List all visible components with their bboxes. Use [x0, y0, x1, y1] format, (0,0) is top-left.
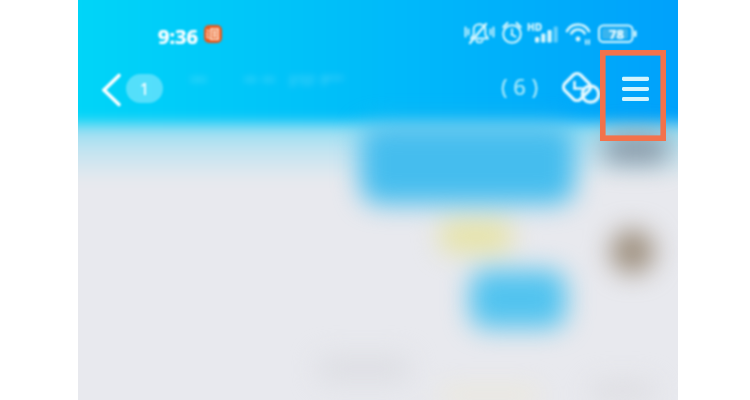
button[interactable]: Coupons — [560, 69, 600, 109]
button[interactable]: Menu highlight — [600, 50, 666, 141]
button[interactable]: Menu — [606, 55, 664, 105]
button[interactable]: 1 — [126, 74, 163, 103]
staticText: 78 — [609, 25, 624, 42]
button[interactable]: Back — [96, 64, 128, 116]
staticText: 1 — [140, 78, 150, 100]
staticText: ( 6 ) — [501, 71, 539, 101]
staticText: HD — [527, 20, 542, 34]
staticText: 9:36 — [158, 23, 198, 50]
